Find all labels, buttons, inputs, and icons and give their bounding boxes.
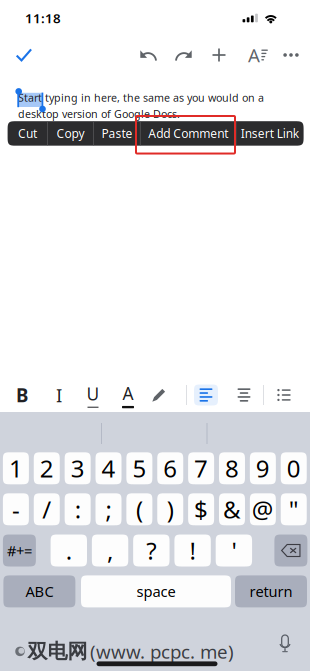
staticText: !	[190, 535, 196, 566]
button[interactable]: 1	[3, 452, 29, 484]
button[interactable]: Align center	[229, 379, 259, 411]
button[interactable]: 6	[157, 452, 183, 484]
staticText: 6	[163, 452, 177, 484]
button[interactable]: More options	[276, 39, 306, 71]
staticText: desktop version of Google Docs.	[18, 107, 180, 121]
button[interactable]: space	[81, 575, 231, 607]
button[interactable]: :	[65, 493, 91, 525]
staticText: space	[136, 582, 175, 601]
staticText: 5	[132, 452, 146, 484]
button[interactable]: /	[34, 493, 60, 525]
button[interactable]: (	[126, 493, 152, 525]
staticText: (www. pcpc. me)	[90, 639, 234, 664]
staticText: (	[136, 493, 143, 525]
staticText: 9	[256, 452, 270, 484]
button[interactable]: ,	[92, 534, 128, 566]
staticText: )	[167, 493, 174, 525]
button[interactable]: 0	[281, 452, 307, 484]
button[interactable]: I	[44, 379, 74, 411]
button[interactable]: Undo	[133, 39, 163, 71]
staticText: A	[122, 382, 133, 405]
button[interactable]: Paste	[94, 121, 140, 145]
staticText: 7	[194, 452, 208, 484]
button[interactable]: 5	[126, 452, 152, 484]
button[interactable]: 2	[34, 452, 60, 484]
staticText: U	[86, 382, 99, 405]
staticText: return	[249, 582, 292, 601]
button[interactable]: Delete	[274, 534, 307, 566]
staticText: Add Comment	[148, 125, 228, 141]
button[interactable]: Redo	[169, 39, 199, 71]
button[interactable]: ABC	[3, 575, 75, 607]
button[interactable]: )	[157, 493, 183, 525]
staticText: 4	[101, 452, 115, 484]
button[interactable]: 8	[219, 452, 245, 484]
button[interactable]: 9	[250, 452, 276, 484]
button[interactable]: Insert Link	[236, 121, 303, 145]
staticText: I	[56, 383, 62, 407]
staticText: /	[42, 493, 51, 525]
button[interactable]: Dictate	[272, 629, 298, 655]
staticText: '	[231, 535, 236, 566]
button[interactable]: Add Comment	[141, 121, 236, 145]
staticText: 3	[71, 452, 85, 484]
staticText: Insert Link	[241, 125, 299, 141]
button[interactable]: #+=	[3, 534, 36, 566]
button[interactable]: ?	[133, 534, 169, 566]
staticText: Start typing in here, the same as you wo…	[18, 90, 264, 105]
button[interactable]: -	[3, 493, 29, 525]
staticText: @	[252, 493, 274, 525]
staticText: 2	[40, 452, 54, 484]
staticText: &	[223, 493, 241, 525]
staticText: :	[75, 493, 81, 525]
button[interactable]: Align left	[191, 379, 221, 411]
button[interactable]: Text formatting	[243, 39, 273, 71]
button[interactable]: '	[216, 534, 252, 566]
button[interactable]: 3	[65, 452, 91, 484]
staticText: .	[66, 535, 72, 566]
button[interactable]: Cut	[8, 121, 47, 145]
staticText: B	[16, 383, 28, 407]
button[interactable]: Bulleted list	[269, 379, 299, 411]
button[interactable]: return	[235, 575, 307, 607]
staticText: Cut	[18, 125, 37, 141]
staticText: $	[194, 493, 208, 525]
button[interactable]: Copy	[48, 121, 93, 145]
staticText: Paste	[101, 125, 132, 141]
button[interactable]: ;	[95, 493, 121, 525]
button[interactable]: $	[188, 493, 214, 525]
staticText: 1	[9, 452, 23, 484]
button[interactable]: A	[113, 379, 143, 411]
button[interactable]: &	[219, 493, 245, 525]
button[interactable]: "	[281, 493, 307, 525]
button[interactable]: Highlight color	[144, 379, 174, 411]
staticText: 双电网	[27, 639, 87, 664]
staticText: 0	[287, 452, 301, 484]
staticText: A	[248, 43, 260, 67]
staticText: Copy	[56, 125, 84, 141]
button[interactable]: 4	[95, 452, 121, 484]
button[interactable]: !	[174, 534, 211, 566]
staticText: ,	[107, 535, 113, 566]
button[interactable]: U	[78, 379, 108, 411]
staticText: ;	[105, 493, 111, 525]
staticText: "	[289, 493, 299, 525]
staticText: 8	[225, 452, 239, 484]
staticText: -	[12, 493, 20, 525]
button[interactable]: 7	[188, 452, 214, 484]
button[interactable]: .	[51, 534, 87, 566]
button[interactable]: Done	[7, 39, 41, 71]
button[interactable]: Insert	[204, 39, 234, 71]
staticText: ?	[146, 535, 156, 566]
staticText: ABC	[25, 582, 53, 601]
button[interactable]: B	[7, 379, 37, 411]
staticText: #+=	[7, 541, 32, 560]
staticText: 11:18	[25, 9, 61, 27]
button[interactable]: @	[250, 493, 276, 525]
